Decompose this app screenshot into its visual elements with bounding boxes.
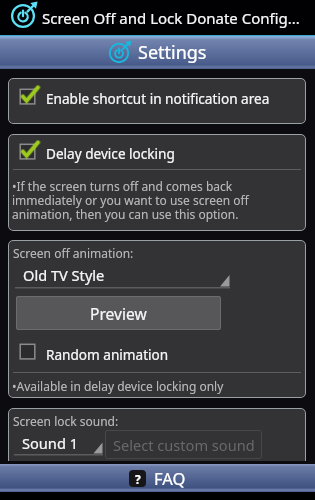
- staticText: Old TV Style: [23, 265, 105, 285]
- staticText: Select custom sound: [113, 435, 255, 455]
- button[interactable]: Select custom sound: [105, 430, 262, 459]
- button[interactable]: Delay device locking: [8, 134, 306, 169]
- other: App icon: [10, 3, 36, 29]
- staticText: Preview: [90, 303, 147, 324]
- button[interactable]: ?: [0, 464, 315, 492]
- button[interactable]: Sound 1: [14, 432, 103, 456]
- staticText: Screen Off and Lock Donate Config...: [42, 8, 300, 28]
- button[interactable]: Preview: [16, 296, 221, 330]
- staticText: Screen off animation:: [13, 245, 134, 261]
- button[interactable]: Settings: [0, 35, 315, 69]
- staticText: Settings: [138, 40, 207, 65]
- button[interactable]: Random animation: [8, 336, 306, 366]
- button[interactable]: Enable shortcut in notification area: [8, 78, 306, 124]
- staticText: Enable shortcut in notification area: [46, 89, 270, 108]
- staticText: Screen lock sound:: [13, 413, 119, 429]
- staticText: Random animation: [46, 345, 169, 364]
- staticText: ?: [135, 471, 141, 487]
- staticText: FAQ: [154, 467, 186, 489]
- staticText: •If the screen turns off and comes back …: [12, 178, 262, 222]
- staticText: Sound 1: [22, 433, 78, 453]
- button[interactable]: Old TV Style: [15, 263, 230, 289]
- staticText: •Available in delay device locking only: [12, 378, 224, 394]
- staticText: Delay device locking: [46, 144, 175, 163]
